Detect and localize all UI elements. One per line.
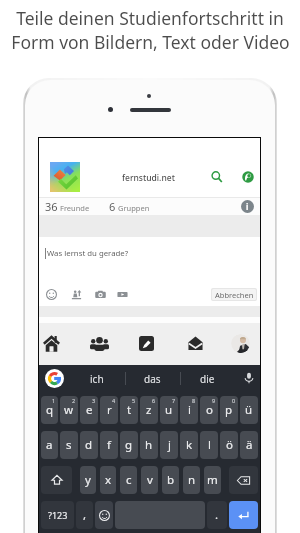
button[interactable]: s bbox=[60, 431, 78, 459]
button[interactable]: b bbox=[162, 466, 179, 494]
staticText: t bbox=[127, 402, 132, 418]
button[interactable]: die bbox=[187, 367, 227, 390]
staticText: o bbox=[206, 402, 213, 418]
button[interactable]: Emoji bbox=[43, 286, 59, 302]
button[interactable]: Abbrechen bbox=[212, 289, 256, 300]
staticText: a bbox=[46, 437, 53, 453]
staticText: , bbox=[83, 507, 87, 523]
staticText: g bbox=[125, 437, 133, 453]
button[interactable]: n bbox=[183, 466, 200, 494]
staticText: 1 bbox=[52, 397, 56, 404]
staticText: . bbox=[215, 507, 219, 523]
button[interactable]: a bbox=[41, 431, 58, 459]
staticText: 5 bbox=[132, 397, 136, 404]
button[interactable]: z bbox=[140, 396, 158, 424]
button[interactable]: Enter bbox=[229, 501, 258, 529]
staticText: u bbox=[165, 402, 173, 418]
staticText: r bbox=[107, 402, 112, 418]
staticText: 36 bbox=[45, 199, 58, 214]
staticText: 4 bbox=[112, 397, 116, 404]
button[interactable]: Home bbox=[39, 331, 63, 355]
staticText: e bbox=[86, 402, 93, 418]
button[interactable]: Camera bbox=[92, 286, 108, 302]
button[interactable]: l bbox=[200, 431, 218, 459]
button[interactable]: ü bbox=[240, 396, 258, 424]
button[interactable]: c bbox=[120, 466, 137, 494]
button[interactable]: y bbox=[80, 466, 96, 494]
button[interactable]: r bbox=[100, 396, 118, 424]
button[interactable]: m bbox=[204, 466, 221, 494]
staticText: p bbox=[225, 402, 233, 418]
button[interactable]: h bbox=[140, 431, 158, 459]
button[interactable]: x bbox=[100, 466, 116, 494]
button[interactable]: f bbox=[100, 431, 118, 459]
button[interactable]: , bbox=[76, 501, 93, 529]
staticText: Was lernst du gerade? bbox=[47, 248, 129, 259]
button[interactable]: d bbox=[80, 431, 98, 459]
button[interactable]: p bbox=[220, 396, 238, 424]
button[interactable]: ö bbox=[220, 431, 238, 459]
button[interactable]: Language bbox=[238, 167, 258, 187]
button[interactable]: u bbox=[160, 396, 178, 424]
staticText: Freunde bbox=[60, 203, 90, 213]
staticText: 0 bbox=[232, 397, 236, 404]
staticText: ü bbox=[245, 402, 253, 418]
button[interactable]: Messages bbox=[183, 331, 207, 355]
button[interactable]: Compose post bbox=[134, 331, 158, 355]
button[interactable]: . bbox=[207, 501, 227, 529]
button[interactable]: das bbox=[132, 367, 172, 390]
button[interactable]: Upload photo bbox=[68, 286, 84, 302]
staticText: 6 bbox=[109, 199, 116, 214]
button[interactable]: g bbox=[120, 431, 138, 459]
staticText: Abbrechen bbox=[215, 290, 254, 300]
button[interactable]: Groups bbox=[87, 331, 111, 355]
button[interactable]: 6 bbox=[109, 199, 150, 214]
staticText: b bbox=[167, 472, 175, 488]
button[interactable]: e bbox=[80, 396, 98, 424]
staticText: Teile deinen Studienfortschritt in bbox=[16, 6, 284, 30]
button[interactable]: t bbox=[120, 396, 138, 424]
button[interactable]: j bbox=[160, 431, 178, 459]
button[interactable]: Backspace bbox=[229, 466, 258, 494]
staticText: h bbox=[145, 437, 153, 453]
button[interactable]: App logo bbox=[50, 162, 80, 192]
staticText: ö bbox=[226, 437, 233, 453]
staticText: ä bbox=[246, 437, 253, 453]
staticText: das bbox=[144, 372, 161, 386]
staticText: d bbox=[85, 437, 93, 453]
button[interactable]: Info bbox=[241, 200, 254, 213]
staticText: z bbox=[146, 402, 152, 418]
staticText: m bbox=[207, 472, 218, 488]
staticText: ich bbox=[90, 372, 104, 386]
button[interactable]: Google bbox=[45, 369, 64, 388]
staticText: i bbox=[246, 201, 249, 212]
button[interactable]: Was lernst du gerade? bbox=[45, 246, 129, 261]
staticText: s bbox=[66, 437, 72, 453]
button[interactable]: o bbox=[200, 396, 218, 424]
button[interactable]: q bbox=[41, 396, 58, 424]
button[interactable]: v bbox=[141, 466, 158, 494]
staticText: i bbox=[188, 402, 191, 418]
staticText: 2 bbox=[72, 397, 76, 404]
button[interactable]: ä bbox=[240, 431, 258, 459]
staticText: 9 bbox=[212, 397, 216, 404]
button[interactable]: Video bbox=[114, 286, 130, 302]
button[interactable]: Profile bbox=[228, 331, 252, 355]
button[interactable]: k bbox=[180, 431, 198, 459]
staticText: k bbox=[186, 437, 193, 453]
staticText: c bbox=[126, 472, 132, 488]
button[interactable]: w bbox=[60, 396, 78, 424]
staticText: die bbox=[200, 372, 215, 386]
button[interactable]: i bbox=[180, 396, 198, 424]
staticText: x bbox=[105, 472, 112, 488]
button[interactable]: Emoji bbox=[95, 501, 113, 529]
button[interactable]: 36 bbox=[45, 199, 90, 214]
button[interactable]: Shift bbox=[41, 466, 72, 494]
button[interactable]: ich bbox=[77, 367, 117, 390]
staticText: Form von Bildern, Text oder Video bbox=[11, 30, 290, 54]
staticText: fernstudi.net bbox=[122, 172, 175, 184]
button[interactable]: Voice input bbox=[239, 368, 259, 388]
button[interactable]: ?123 bbox=[41, 501, 74, 529]
button[interactable]: Search bbox=[207, 167, 227, 187]
